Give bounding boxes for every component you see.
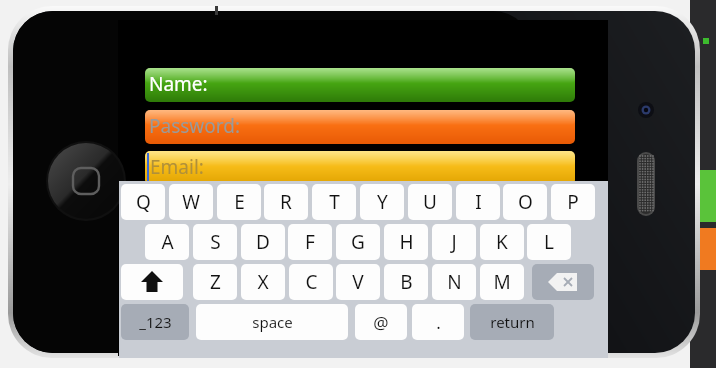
button[interactable]: P (551, 184, 595, 220)
staticText: K (496, 229, 508, 255)
staticText: N (447, 269, 462, 295)
button[interactable]: _123 (121, 304, 189, 340)
staticText: B (400, 269, 413, 295)
staticText: Email: (150, 154, 204, 180)
staticText: C (305, 269, 318, 295)
staticText: Password: (149, 113, 241, 139)
staticText: M (493, 269, 511, 295)
staticText: S (210, 229, 221, 255)
button[interactable]: L (527, 224, 571, 260)
button[interactable]: J (432, 224, 476, 260)
button[interactable]: W (169, 184, 213, 220)
staticText: G (351, 229, 365, 255)
staticText: Y (377, 189, 388, 215)
staticText: T (329, 189, 340, 215)
button[interactable]: @ (355, 304, 407, 340)
button[interactable]: K (480, 224, 524, 260)
button[interactable]: E (217, 184, 261, 220)
button[interactable]: A (145, 224, 189, 260)
staticText: . (436, 311, 441, 334)
staticText: H (399, 229, 414, 255)
staticText: V (352, 269, 364, 295)
staticText: F (305, 229, 315, 255)
staticText: D (256, 229, 270, 255)
button[interactable]: X (241, 264, 285, 300)
staticText: W (182, 189, 200, 215)
staticText: J (451, 229, 457, 255)
button[interactable]: N (432, 264, 476, 300)
staticText: Z (210, 269, 221, 295)
button[interactable]: Shift (121, 264, 183, 300)
staticText: L (544, 229, 554, 255)
staticText: R (280, 189, 292, 215)
staticText: P (567, 189, 579, 215)
staticText: return (490, 312, 535, 332)
button[interactable]: M (480, 264, 524, 300)
button[interactable]: C (289, 264, 333, 300)
button[interactable]: H (384, 224, 428, 260)
staticText: A (161, 229, 174, 255)
button[interactable]: Z (193, 264, 237, 300)
button[interactable]: R (264, 184, 308, 220)
button[interactable]: . (412, 304, 464, 340)
button[interactable]: F (288, 224, 332, 260)
staticText: _123 (139, 312, 172, 332)
button[interactable]: O (503, 184, 547, 220)
button[interactable]: Backspace (532, 264, 594, 300)
button[interactable]: Y (360, 184, 404, 220)
button[interactable]: return (470, 304, 554, 340)
button[interactable]: D (241, 224, 285, 260)
staticText: O (518, 189, 533, 215)
button[interactable]: B (384, 264, 428, 300)
staticText: Q (136, 189, 151, 215)
button[interactable]: V (336, 264, 380, 300)
button[interactable]: U (408, 184, 452, 220)
staticText: Name: (149, 71, 208, 97)
button[interactable]: Q (121, 184, 165, 220)
staticText: space (252, 312, 293, 332)
staticText: I (475, 189, 482, 215)
staticText: E (234, 189, 245, 215)
button[interactable]: T (312, 184, 356, 220)
button[interactable]: space (196, 304, 348, 340)
staticText: X (257, 269, 269, 295)
staticText: U (423, 189, 437, 215)
button[interactable]: G (336, 224, 380, 260)
button[interactable]: S (193, 224, 237, 260)
staticText: @ (373, 311, 389, 334)
button[interactable]: I (456, 184, 500, 220)
